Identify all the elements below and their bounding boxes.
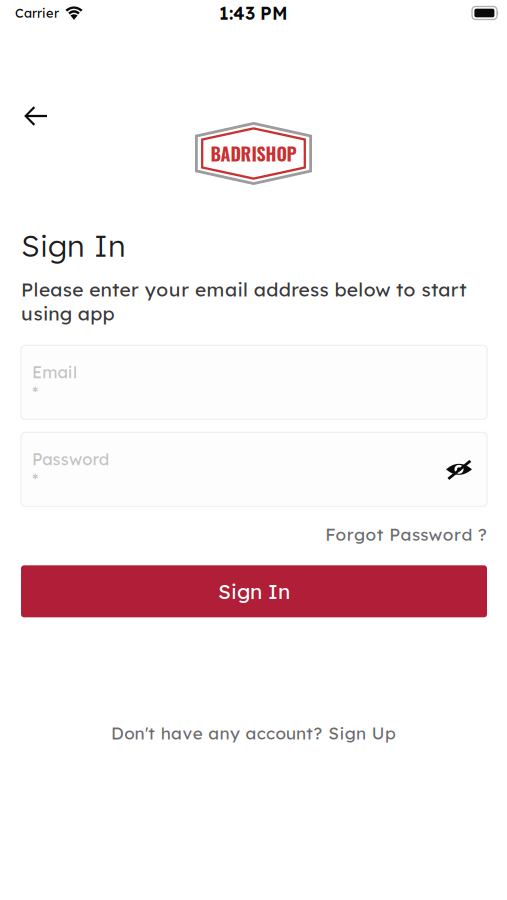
button[interactable]: Don't have any account? Sign Up xyxy=(0,722,507,744)
button[interactable]: Show password xyxy=(444,457,474,481)
staticText: Please enter your email address below to… xyxy=(21,277,466,325)
staticText: Carrier xyxy=(15,5,59,21)
staticText: Password * xyxy=(32,449,109,490)
button[interactable]: Forgot Password ? xyxy=(287,524,487,544)
staticText: Don't have any account? Sign Up xyxy=(111,722,396,744)
staticText: Email * xyxy=(32,362,77,403)
staticText: Forgot Password ? xyxy=(325,524,487,545)
staticText: Sign In xyxy=(218,578,290,604)
button[interactable]: Sign In xyxy=(21,565,487,617)
staticText: Sign In xyxy=(21,226,126,264)
button[interactable]: Back xyxy=(11,93,61,139)
staticText: 1:43 PM xyxy=(219,2,288,24)
staticText: BADRISHOP xyxy=(210,140,296,167)
